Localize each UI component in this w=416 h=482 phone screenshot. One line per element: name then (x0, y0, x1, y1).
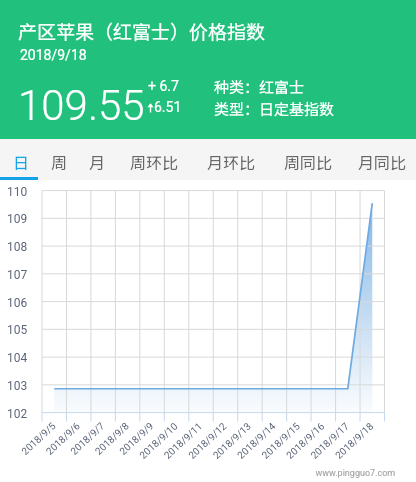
staticText: 6.51 (154, 99, 182, 115)
button[interactable]: 周环比 (116, 139, 193, 180)
staticText: 109.55 (18, 81, 145, 130)
button[interactable]: 月同比 (347, 139, 416, 180)
button[interactable]: 月环比 (193, 139, 270, 180)
button[interactable]: 周 (40, 139, 78, 180)
button[interactable]: 月 (78, 139, 116, 180)
button[interactable]: 日 (2, 139, 40, 180)
staticText: 日 (13, 150, 30, 173)
staticText: 周 (51, 150, 68, 173)
staticText: 种类：红富士 (214, 76, 305, 98)
staticText: 周环比 (130, 150, 179, 173)
staticText: + 6.7 (148, 78, 179, 94)
staticText: 2018/9/18 (20, 47, 87, 63)
staticText: 月 (89, 150, 106, 173)
button[interactable]: 周同比 (270, 139, 347, 180)
staticText: 月同比 (358, 150, 407, 173)
staticText: 周同比 (284, 150, 333, 173)
staticText: 类型：日定基指数 (214, 98, 335, 120)
staticText: 月环比 (207, 150, 256, 173)
staticText: 产区苹果（红富士）价格指数 (18, 17, 266, 45)
